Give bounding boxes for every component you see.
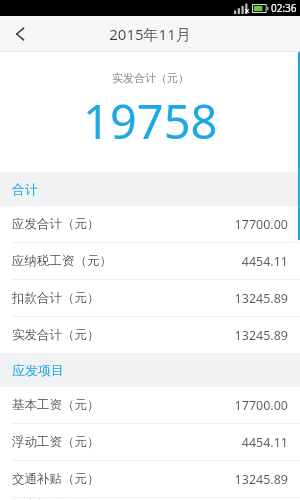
staticText: 4454.11 [241,253,288,270]
staticText: 02:36 [271,1,297,15]
staticText: 住房补贴（元） [12,498,100,500]
staticText: 基本工资（元） [12,397,100,413]
staticText: 2015年11月 [109,24,191,44]
staticText: 13245.89 [234,471,288,488]
button[interactable]: 扣款合计（元） [0,280,300,316]
staticText: 实发合计（元） [12,327,100,343]
staticText: 实发合计（元） [112,71,189,85]
button[interactable]: 应纳税工资（元） [0,243,300,279]
staticText: 17700.00 [234,397,288,414]
staticText: 17700.00 [234,216,288,233]
button[interactable]: Back [0,16,40,52]
staticText: 交通补贴（元） [12,471,100,487]
staticText: 13245.89 [234,290,288,307]
button[interactable]: 浮动工资（元） [0,424,300,460]
staticText: 扣款合计（元） [12,290,100,306]
staticText: 应发合计（元） [12,216,100,232]
staticText: 应纳税工资（元） [12,253,112,269]
staticText: 13245.89 [234,327,288,344]
button[interactable]: 实发合计（元） [0,317,300,353]
staticText: 19758 [83,89,218,153]
staticText: 合计 [12,181,38,197]
staticText: 浮动工资（元） [12,434,100,450]
button[interactable]: 应发合计（元） [0,206,300,242]
staticText: 应发项目 [12,362,64,378]
button[interactable]: 交通补贴（元） [0,461,300,497]
staticText: 4454.11 [241,434,288,451]
button[interactable]: 基本工资（元） [0,387,300,423]
